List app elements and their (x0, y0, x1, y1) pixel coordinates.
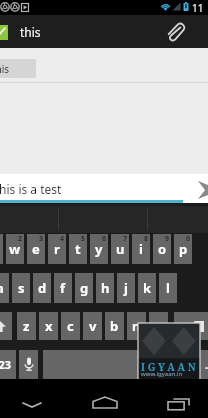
staticText: his is a test (0, 181, 62, 197)
button[interactable]: Back (10, 379, 54, 418)
staticText: . (205, 357, 208, 372)
staticText: 8 (144, 234, 149, 244)
button[interactable]: a (0, 273, 9, 303)
staticText: v (89, 317, 97, 335)
staticText: p (179, 240, 188, 258)
button[interactable]: p (174, 234, 192, 264)
button[interactable]: u (111, 234, 129, 264)
button[interactable]: n (127, 312, 146, 340)
button[interactable]: x (39, 312, 58, 340)
staticText: y (95, 240, 103, 258)
staticText: w (9, 240, 21, 258)
staticText: o (158, 240, 167, 258)
staticText: e (32, 240, 40, 258)
button[interactable]: i (132, 234, 150, 264)
staticText: c (67, 317, 74, 335)
button[interactable]: Recent apps (156, 379, 200, 418)
button[interactable]: w (6, 234, 24, 264)
staticText: d (38, 279, 47, 297)
button[interactable]: b (105, 312, 124, 340)
button[interactable]: l (159, 273, 177, 303)
staticText: this (0, 62, 10, 76)
staticText: ?123 (0, 357, 12, 372)
staticText: b (110, 317, 119, 335)
button[interactable]: m (149, 312, 168, 340)
staticText: a (0, 279, 4, 297)
button[interactable]: e (27, 234, 45, 264)
button[interactable]: ?123 (0, 350, 16, 379)
staticText: 6 (102, 234, 107, 244)
button[interactable]: h (96, 273, 114, 303)
button[interactable]: Voice input (19, 350, 38, 379)
staticText: m (152, 317, 165, 335)
staticText: 5 (81, 234, 86, 244)
button[interactable]: d (33, 273, 51, 303)
button[interactable]: Home (83, 379, 127, 418)
staticText: t (75, 240, 81, 258)
staticText: i (139, 240, 143, 258)
staticText: k (143, 279, 152, 297)
staticText: 2 (18, 234, 23, 244)
button[interactable]: . (194, 350, 208, 379)
staticText: 3 (39, 234, 44, 244)
button[interactable]: t (69, 234, 87, 264)
button[interactable]: s (12, 273, 30, 303)
staticText: www.igyaan.in (141, 370, 183, 378)
staticText: h (101, 279, 110, 297)
button[interactable]: r (48, 234, 66, 264)
button[interactable]: o (153, 234, 171, 264)
staticText: g (80, 279, 89, 297)
button[interactable]: c (61, 312, 80, 340)
staticText: n (132, 317, 141, 335)
button[interactable]: k (138, 273, 156, 303)
button[interactable]: f (54, 273, 72, 303)
button[interactable]: Backspace (174, 312, 208, 340)
staticText: 9 (165, 234, 170, 244)
staticText: f (60, 279, 66, 297)
button[interactable]: this (0, 15, 208, 48)
staticText: this (20, 24, 41, 40)
button[interactable]: g (75, 273, 93, 303)
button[interactable]: j (117, 273, 135, 303)
staticText: u (116, 240, 125, 258)
staticText: l (166, 279, 170, 297)
button[interactable]: z (17, 312, 36, 340)
button[interactable]: Send (192, 174, 208, 203)
staticText: 4 (60, 234, 65, 244)
staticText: x (45, 317, 53, 335)
staticText: r (54, 240, 60, 258)
staticText: IGYAAN (141, 360, 199, 374)
staticText: j (124, 279, 128, 297)
button[interactable]: v (83, 312, 102, 340)
staticText: z (23, 317, 30, 335)
button[interactable]: Attach (158, 15, 191, 48)
staticText: s (18, 279, 25, 297)
button[interactable]: y (90, 234, 108, 264)
staticText: 0 (186, 234, 191, 244)
button[interactable]: Space (43, 350, 190, 379)
button[interactable]: Shift (0, 312, 12, 340)
staticText: 11 (192, 1, 204, 15)
staticText: 7 (123, 234, 128, 244)
